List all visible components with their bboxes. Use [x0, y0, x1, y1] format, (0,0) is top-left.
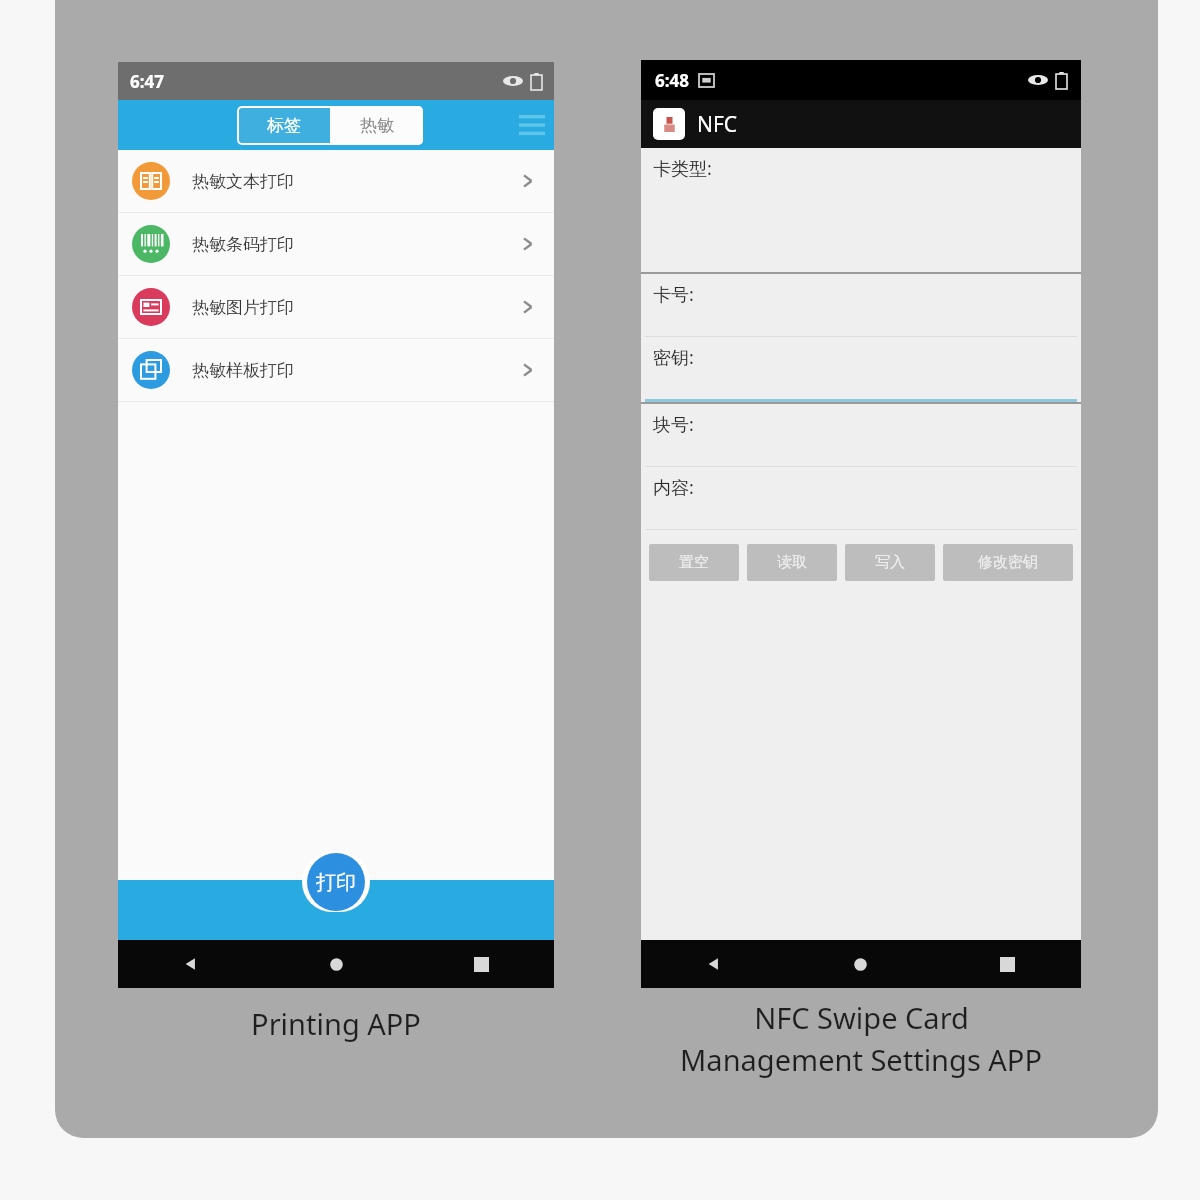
staticText: 内容:: [653, 475, 694, 500]
button[interactable]: 读取: [747, 544, 837, 581]
button[interactable]: 写入: [845, 544, 935, 581]
staticText: 置空: [679, 553, 709, 572]
button[interactable]: 热敏图片打印: [118, 276, 554, 338]
staticText: 热敏样板打印: [192, 360, 294, 381]
button[interactable]: Back: [118, 940, 264, 988]
staticText: 密钥:: [653, 345, 694, 370]
button[interactable]: 打印: [302, 852, 370, 912]
staticText: NFC Swipe Card: [754, 998, 969, 1037]
staticText: 读取: [777, 553, 807, 572]
staticText: Management Settings APP: [680, 1040, 1042, 1079]
button[interactable]: Back: [641, 940, 787, 988]
staticText: 块号:: [653, 412, 694, 437]
staticText: 写入: [875, 553, 905, 572]
staticText: 卡类型:: [653, 156, 712, 181]
button[interactable]: 热敏: [330, 106, 423, 145]
staticText: 6:48: [655, 69, 689, 92]
button[interactable]: 修改密钥: [943, 544, 1073, 581]
staticText: NFC: [697, 110, 738, 139]
button[interactable]: Home: [264, 940, 409, 988]
staticText: 卡号:: [653, 282, 694, 307]
button[interactable]: 置空: [649, 544, 739, 581]
staticText: 6:47: [130, 70, 164, 93]
button[interactable]: Recent apps: [409, 940, 554, 988]
button[interactable]: 热敏文本打印: [118, 150, 554, 212]
staticText: 热敏图片打印: [192, 297, 294, 318]
button[interactable]: 热敏条码打印: [118, 213, 554, 275]
staticText: 修改密钥: [978, 553, 1038, 572]
button[interactable]: Recent apps: [934, 940, 1081, 988]
button[interactable]: 标签: [237, 106, 330, 145]
button[interactable]: Home: [787, 940, 934, 988]
staticText: 标签: [267, 115, 301, 136]
button[interactable]: Menu: [510, 103, 554, 147]
staticText: 打印: [316, 870, 356, 895]
staticText: Printing APP: [251, 1004, 421, 1043]
staticText: 热敏文本打印: [192, 171, 294, 192]
button[interactable]: 热敏样板打印: [118, 339, 554, 401]
staticText: 热敏条码打印: [192, 234, 294, 255]
staticText: 热敏: [360, 115, 394, 136]
